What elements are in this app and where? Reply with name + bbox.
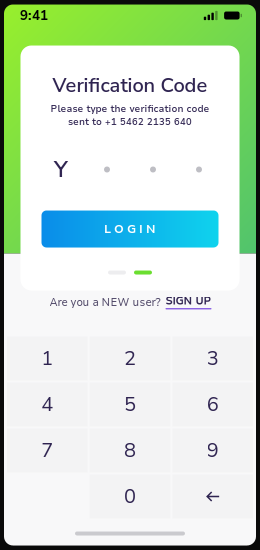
staticText: 7 — [41, 437, 53, 464]
staticText: 6 — [207, 391, 219, 418]
button[interactable]: L O G I N — [41, 210, 218, 247]
button[interactable]: 9 — [172, 428, 253, 472]
staticText: Verification Code — [52, 72, 207, 99]
staticText: Y — [54, 154, 68, 185]
staticText: 9 — [207, 437, 219, 464]
staticText: L O G I N — [104, 221, 156, 237]
button[interactable]: 2 — [90, 336, 170, 380]
staticText: Are you a NEW user? — [49, 295, 160, 310]
button[interactable]: 1 — [7, 336, 88, 380]
button[interactable]: Delete — [172, 474, 253, 518]
staticText: 4 — [41, 391, 53, 418]
staticText: 1 — [41, 345, 53, 372]
button[interactable]: 4 — [7, 382, 88, 426]
button[interactable]: 8 — [90, 428, 170, 472]
button[interactable]: 5 — [90, 382, 170, 426]
staticText: sent to +1 5462 2135 640 — [68, 116, 192, 128]
staticText: 0 — [124, 483, 136, 510]
button[interactable]: 6 — [172, 382, 253, 426]
staticText: 5 — [124, 391, 136, 418]
button[interactable]: 0 — [90, 474, 170, 518]
button[interactable]: SIGN UP — [165, 295, 211, 309]
staticText: 9:41 — [20, 6, 48, 25]
staticText: Please type the verification code — [50, 103, 209, 115]
button[interactable]: 3 — [172, 336, 253, 380]
staticText: SIGN UP — [165, 294, 211, 308]
staticText: 2 — [124, 345, 136, 372]
button[interactable]: 7 — [7, 428, 88, 472]
staticText: 3 — [207, 345, 219, 372]
staticText: 8 — [124, 437, 136, 464]
